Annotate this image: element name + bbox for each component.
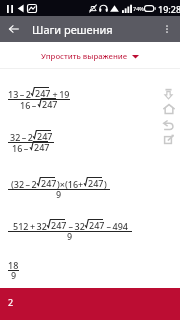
staticText: 74% xyxy=(133,5,144,12)
button[interactable]: 2 xyxy=(0,288,180,320)
staticText: ) xyxy=(104,178,107,190)
staticText: 13 – 2 xyxy=(8,88,31,100)
button[interactable]: Undo xyxy=(160,116,177,133)
staticText: 9 xyxy=(11,269,17,281)
staticText: – 32 xyxy=(67,220,85,232)
button[interactable]: Back xyxy=(0,16,27,42)
staticText: 2 xyxy=(8,296,14,308)
staticText: )×(16+ xyxy=(57,178,84,190)
staticText: 247 xyxy=(35,87,51,99)
staticText: 247 xyxy=(51,219,67,231)
staticText: 16 – xyxy=(12,142,30,154)
button[interactable]: More options xyxy=(153,16,180,42)
staticText: Шаги решения xyxy=(32,22,113,37)
staticText: 16 – xyxy=(20,99,38,111)
button[interactable]: Edit xyxy=(160,131,177,148)
button[interactable]: Download xyxy=(160,85,177,102)
staticText: 247 xyxy=(89,219,105,231)
staticText: Упростить выражение xyxy=(41,51,128,62)
staticText: (32 – 2 xyxy=(11,178,37,190)
staticText: 19:28 xyxy=(158,3,180,15)
staticText: 9 xyxy=(67,230,73,242)
staticText: 512 + 32 xyxy=(13,220,47,232)
staticText: 32 – 2 xyxy=(10,131,33,143)
staticText: + 19 xyxy=(51,88,70,100)
staticText: – 494 xyxy=(105,220,128,232)
staticText: 18 xyxy=(8,259,19,271)
staticText: 247 xyxy=(88,177,104,189)
staticText: 9 xyxy=(56,188,62,200)
staticText: 247 xyxy=(37,130,53,142)
staticText: 247 xyxy=(41,177,57,189)
button[interactable]: Home xyxy=(160,100,177,117)
button[interactable]: Упростить выражение xyxy=(37,49,143,64)
staticText: 247 xyxy=(34,141,50,153)
staticText: 247 xyxy=(42,98,58,110)
